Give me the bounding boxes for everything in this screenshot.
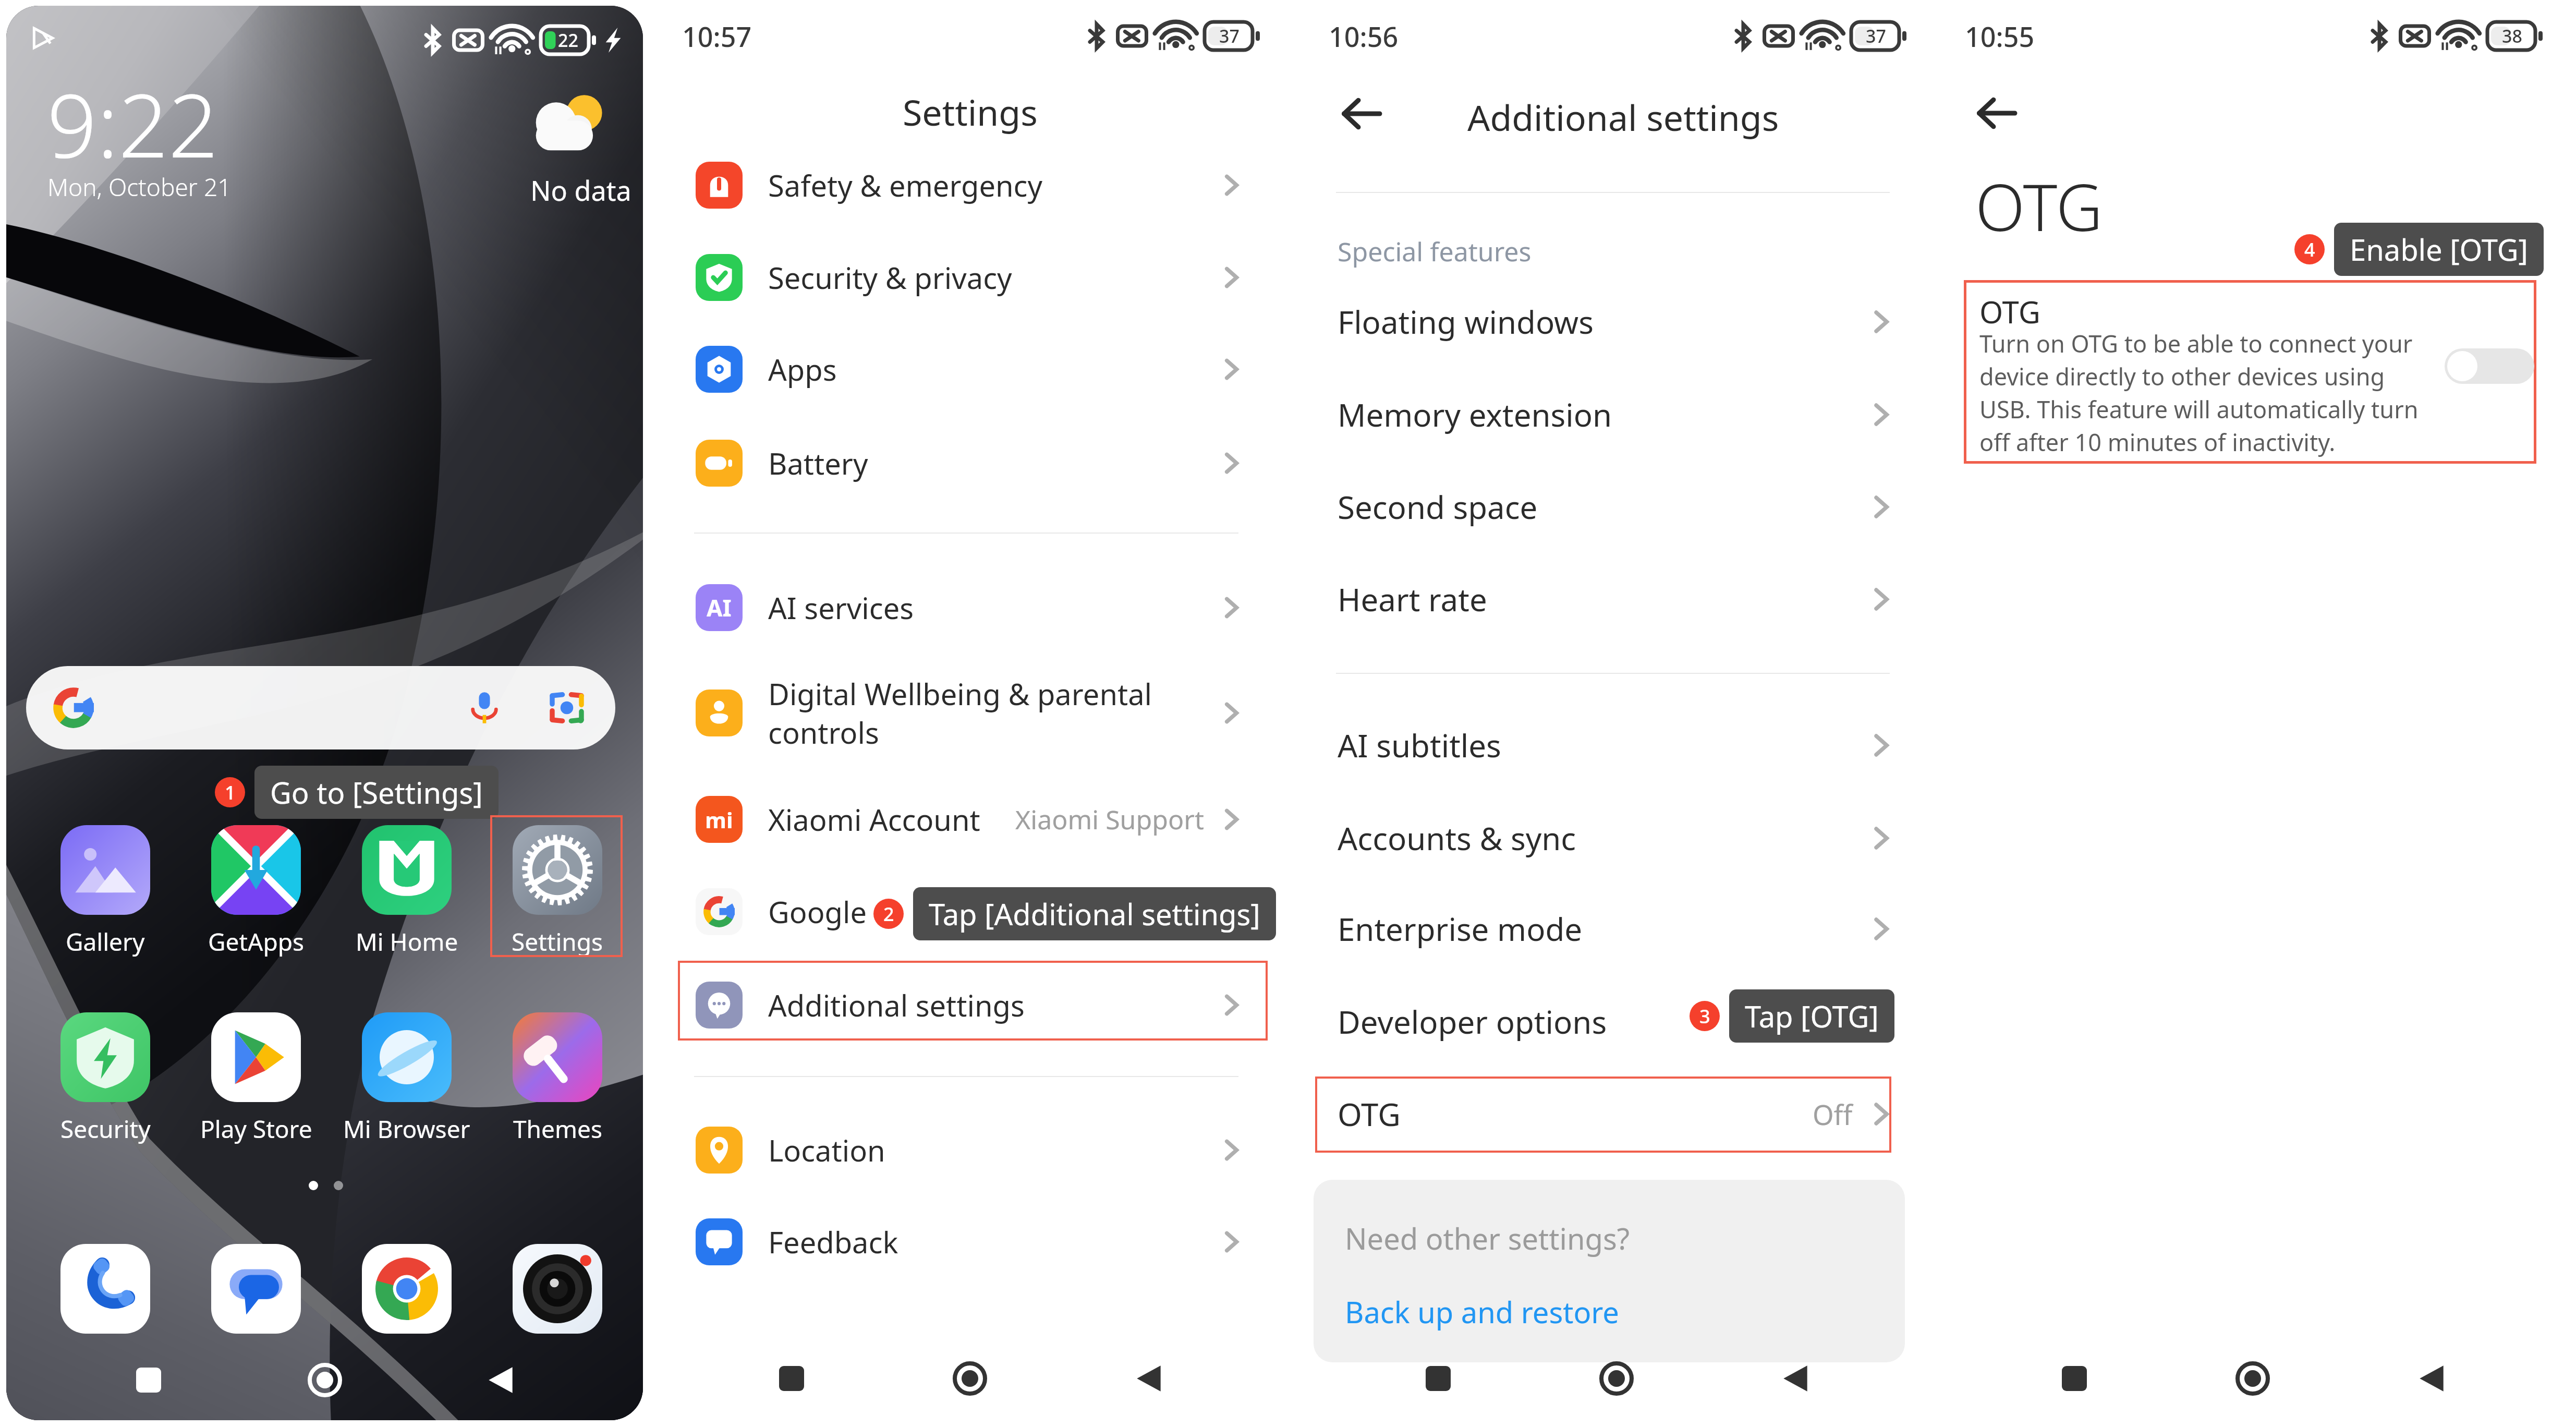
button[interactable]: Heart rate xyxy=(1293,561,1940,637)
staticText: Off xyxy=(1813,1096,1853,1133)
button[interactable]: Second space xyxy=(1293,469,1940,545)
staticText: Google xyxy=(768,892,867,932)
staticText: 22 xyxy=(558,28,578,52)
button[interactable]: Memory extension xyxy=(1293,377,1940,453)
button[interactable]: Feedback xyxy=(647,1203,1293,1281)
button[interactable]: Back xyxy=(2398,1345,2465,1412)
staticText: Settings xyxy=(903,88,1038,136)
staticText: OTG xyxy=(1338,1093,1401,1135)
staticText: Floating windows xyxy=(1338,300,1594,343)
staticText: Accounts & sync xyxy=(1338,817,1576,860)
button[interactable]: Digital Wellbeing & parental controls xyxy=(647,674,1293,752)
button[interactable]: Back xyxy=(467,1346,534,1414)
staticText: Safety & emergency xyxy=(768,165,1043,205)
button[interactable]: Recents xyxy=(2040,1345,2108,1412)
button[interactable]: Back xyxy=(1974,91,2019,136)
button[interactable]: AI xyxy=(647,569,1293,647)
staticText: 3 xyxy=(1699,1003,1710,1029)
button[interactable]: Mi Home xyxy=(332,825,482,958)
staticText: Back up and restore xyxy=(1345,1292,1619,1332)
staticText: Tap [Additional settings] xyxy=(929,894,1260,934)
staticText: Mon, October 21 xyxy=(47,171,232,203)
staticText: 10:57 xyxy=(682,18,752,55)
button[interactable]: Messages xyxy=(211,1244,301,1334)
button[interactable]: Back xyxy=(1339,91,1384,136)
staticText: Developer options xyxy=(1338,1000,1607,1043)
staticText: Digital Wellbeing & parental controls xyxy=(768,674,1152,752)
button[interactable]: Recents xyxy=(1404,1345,1472,1412)
button[interactable]: Back xyxy=(1761,1345,1829,1412)
button[interactable]: Recents xyxy=(758,1345,825,1412)
staticText: 9:22 xyxy=(47,64,218,183)
button[interactable]: Home xyxy=(2219,1345,2287,1412)
button[interactable]: Back up and restore xyxy=(1314,1283,1905,1340)
staticText: Go to [Settings] xyxy=(270,772,483,812)
staticText: Security xyxy=(60,1112,151,1145)
staticText: Security & privacy xyxy=(768,258,1012,297)
button[interactable]: OTG xyxy=(1293,1076,1940,1152)
button[interactable]: Apps xyxy=(647,330,1293,408)
button[interactable]: Themes xyxy=(482,1012,633,1145)
button[interactable]: Play Store xyxy=(181,1012,331,1145)
button[interactable]: Camera xyxy=(513,1244,602,1334)
staticText: Memory extension xyxy=(1338,393,1612,436)
button[interactable]: Home xyxy=(1583,1345,1650,1412)
staticText: Settings xyxy=(512,925,603,958)
button[interactable]: Accounts & sync xyxy=(1293,800,1940,876)
staticText: Mi Home xyxy=(356,925,458,958)
staticText: Apps xyxy=(768,349,837,389)
staticText: 37 xyxy=(1866,24,1886,48)
button[interactable]: Floating windows xyxy=(1293,284,1940,360)
staticText: AI services xyxy=(768,588,914,627)
staticText: 4 xyxy=(2304,237,2315,262)
button[interactable]: Chrome xyxy=(362,1244,452,1334)
button[interactable]: Safety & emergency xyxy=(647,146,1293,224)
button[interactable]: Additional settings xyxy=(647,966,1293,1044)
staticText: Enterprise mode xyxy=(1338,908,1583,950)
staticText: Additional settings xyxy=(1467,93,1779,141)
staticText: Need other settings? xyxy=(1345,1218,1630,1258)
button[interactable]: Settings xyxy=(482,825,633,958)
button[interactable]: Google xyxy=(647,873,1293,951)
staticText: Themes xyxy=(513,1112,602,1145)
button[interactable]: Google search xyxy=(26,666,615,749)
staticText: Turn on OTG to be able to connect your d… xyxy=(1979,328,2419,458)
button[interactable]: Enterprise mode xyxy=(1293,891,1940,967)
button[interactable]: GetApps xyxy=(181,825,331,958)
button[interactable]: Battery xyxy=(647,424,1293,502)
staticText: Play Store xyxy=(200,1112,312,1145)
button[interactable]: Home xyxy=(291,1346,359,1414)
staticText: Special features xyxy=(1338,234,1532,269)
staticText: 10:55 xyxy=(1965,18,2035,55)
button[interactable]: Mi Browser xyxy=(332,1012,482,1145)
staticText: AI subtitles xyxy=(1338,724,1501,767)
button[interactable]: Gallery xyxy=(30,825,180,958)
button[interactable]: Recents xyxy=(115,1346,183,1414)
staticText: AI xyxy=(707,592,732,623)
staticText: Mi Browser xyxy=(343,1112,470,1145)
staticText: Xiaomi Account xyxy=(768,800,980,839)
staticText: Tap [OTG] xyxy=(1745,996,1879,1036)
staticText: 2 xyxy=(883,901,894,927)
button[interactable]: Phone xyxy=(60,1244,150,1334)
staticText: OTG xyxy=(1975,162,2103,250)
staticText: Xiaomi Support xyxy=(1015,802,1204,837)
button[interactable]: AI subtitles xyxy=(1293,707,1940,783)
button[interactable]: Home xyxy=(936,1345,1004,1412)
button[interactable]: Location xyxy=(647,1111,1293,1189)
staticText: Additional settings xyxy=(768,985,1025,1025)
staticText: Feedback xyxy=(768,1222,898,1262)
button[interactable]: Security & privacy xyxy=(647,238,1293,317)
staticText: 37 xyxy=(1219,24,1240,48)
button[interactable]: Security xyxy=(30,1012,180,1145)
button[interactable]: Developer options xyxy=(1293,984,1940,1060)
button[interactable]: mi xyxy=(647,780,1293,858)
staticText: Battery xyxy=(768,443,868,483)
staticText: 38 xyxy=(2502,24,2522,48)
staticText: OTG xyxy=(1979,291,2040,332)
button[interactable]: Enable OTG toggle xyxy=(2445,348,2534,384)
staticText: 10:56 xyxy=(1329,18,1399,55)
button[interactable]: Back xyxy=(1115,1345,1183,1412)
staticText: Second space xyxy=(1338,486,1538,528)
staticText: Heart rate xyxy=(1338,578,1487,621)
